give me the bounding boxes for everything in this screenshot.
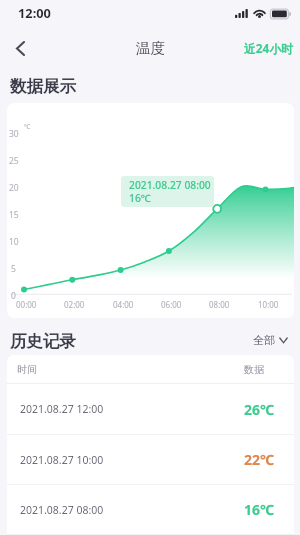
- staticText: 08:00: [209, 299, 230, 310]
- other: Status icons: [234, 0, 292, 28]
- button[interactable]: 近24小时: [233, 30, 300, 64]
- staticText: 04:00: [113, 299, 134, 310]
- staticText: 时间: [17, 363, 37, 376]
- button[interactable]: 2021.08.27 08:00: [7, 485, 294, 534]
- staticText: 16℃: [244, 500, 275, 519]
- staticText: 2021.08.27 08:00: [129, 178, 211, 192]
- staticText: 2021.08.27 10:00: [20, 453, 104, 467]
- staticText: 02:00: [64, 299, 85, 310]
- staticText: 30: [9, 128, 19, 140]
- staticText: 16℃: [129, 191, 152, 205]
- staticText: 5: [11, 263, 16, 275]
- staticText: 22℃: [244, 450, 275, 469]
- staticText: 12:00: [18, 4, 51, 21]
- staticText: 近24小时: [244, 40, 293, 56]
- staticText: 26℃: [244, 400, 275, 419]
- button[interactable]: 2021.08.27 10:00: [7, 435, 294, 484]
- staticText: 25: [9, 155, 19, 167]
- staticText: 15: [9, 209, 19, 221]
- staticText: 00:00: [16, 299, 37, 310]
- staticText: 全部: [253, 333, 275, 347]
- staticText: 06:00: [161, 299, 182, 310]
- staticText: 2021.08.27 12:00: [20, 402, 104, 416]
- button[interactable]: 全部: [243, 326, 300, 352]
- staticText: 历史记录: [10, 331, 76, 352]
- staticText: 10:00: [258, 299, 279, 310]
- staticText: 温度: [136, 39, 165, 57]
- staticText: 数据: [244, 363, 264, 376]
- staticText: 2021.08.27 08:00: [20, 503, 104, 517]
- button[interactable]: Back: [0, 28, 40, 66]
- button[interactable]: 2021.08.27 12:00: [7, 384, 294, 434]
- staticText: 20: [9, 182, 19, 194]
- staticText: ℃: [24, 122, 31, 131]
- staticText: 0: [11, 290, 16, 302]
- staticText: 10: [9, 236, 19, 248]
- staticText: 数据展示: [10, 76, 76, 97]
